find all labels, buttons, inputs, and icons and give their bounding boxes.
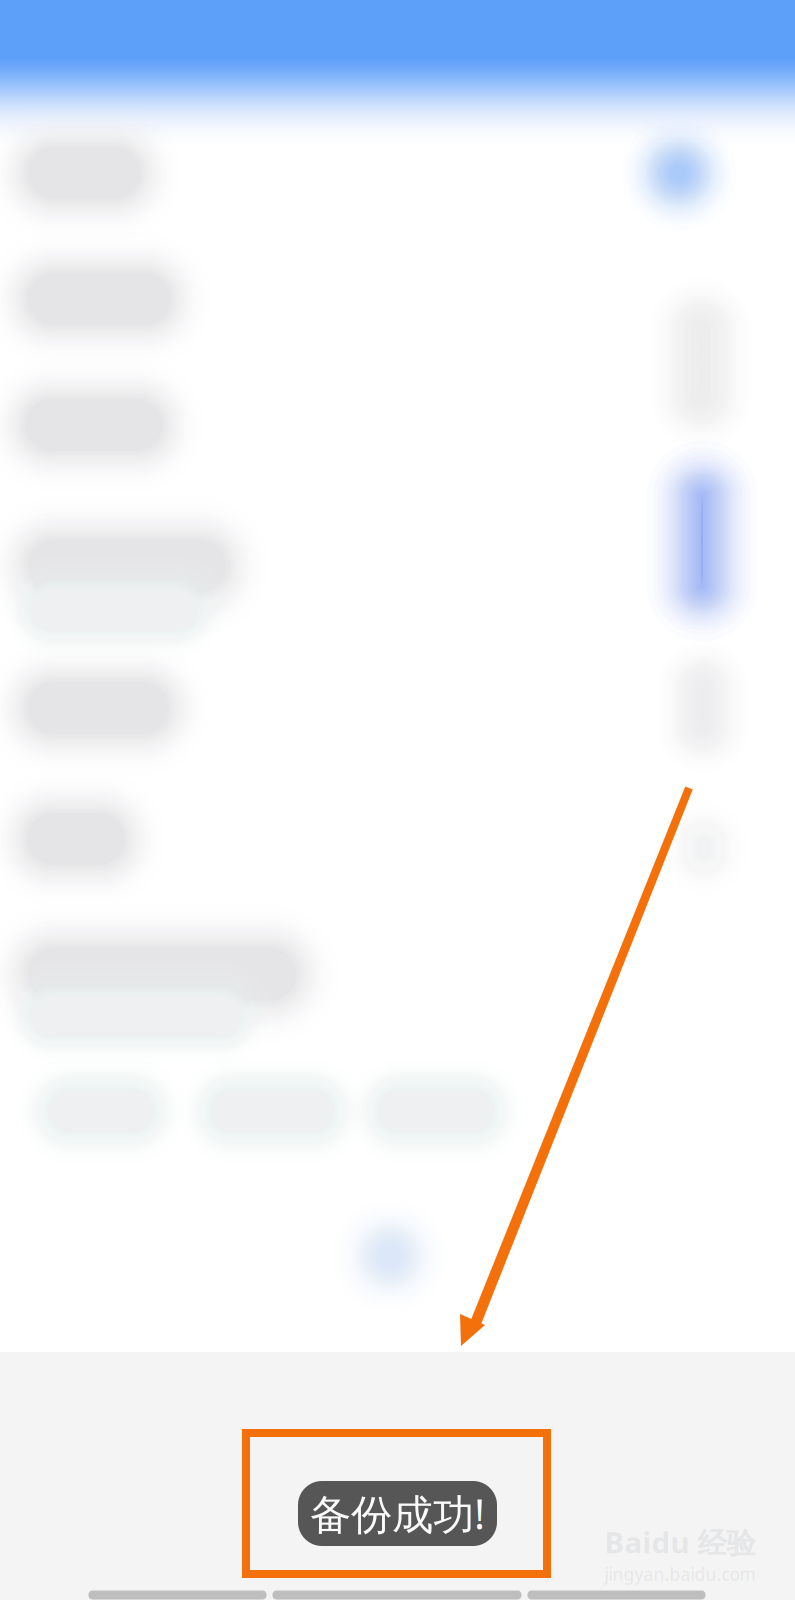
staticText: Baidu 经验: [604, 1522, 755, 1561]
button[interactable]: 备份成功!: [298, 1481, 497, 1546]
staticText: 备份成功!: [310, 1486, 485, 1541]
staticText: jingyan.baidu.com: [604, 1562, 755, 1585]
